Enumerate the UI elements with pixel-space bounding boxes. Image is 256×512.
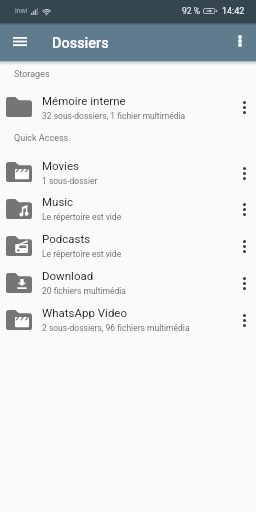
button[interactable]: More options bbox=[224, 22, 256, 61]
staticText: Movies bbox=[42, 159, 79, 172]
button[interactable]: More options for Podcasts bbox=[232, 227, 256, 264]
button[interactable]: WhatsApp Video bbox=[0, 301, 256, 338]
staticText: Quick Access bbox=[14, 133, 69, 144]
button[interactable]: Podcasts bbox=[0, 227, 256, 264]
staticText: Le répertoire est vide bbox=[42, 249, 122, 259]
staticText: Podcasts bbox=[42, 232, 91, 245]
staticText: 1 sous-dossier bbox=[42, 176, 98, 186]
staticText: Download bbox=[42, 269, 94, 282]
button[interactable]: More options for Download bbox=[232, 264, 256, 301]
staticText: Storages bbox=[14, 69, 50, 80]
staticText: 92 % bbox=[182, 6, 200, 16]
staticText: 14:42 bbox=[222, 6, 245, 17]
staticText: 32 sous-dossiers, 1 fichier multimédia bbox=[42, 111, 186, 121]
button[interactable]: Download bbox=[0, 264, 256, 301]
staticText: Mémoire interne bbox=[42, 94, 126, 107]
staticText: Le répertoire est vide bbox=[42, 212, 122, 222]
button[interactable]: Music bbox=[0, 190, 256, 227]
staticText: Music bbox=[42, 195, 74, 208]
button[interactable]: Movies bbox=[0, 154, 256, 190]
staticText: WhatsApp Video bbox=[42, 306, 128, 319]
button[interactable]: More options for Movies bbox=[232, 154, 256, 190]
staticText: 20 fichiers multimédia bbox=[42, 286, 126, 296]
button[interactable]: More options for Music bbox=[232, 190, 256, 227]
staticText: inwi bbox=[15, 7, 28, 15]
button[interactable]: More options for WhatsApp Video bbox=[232, 301, 256, 338]
button[interactable]: More options for Mémoire interne bbox=[232, 88, 256, 125]
button[interactable]: Mémoire interne bbox=[0, 88, 256, 125]
staticText: 2 sous-dossiers, 96 fichiers multimédia bbox=[42, 323, 190, 333]
staticText: Dossiers bbox=[52, 35, 109, 52]
button[interactable]: Open navigation drawer bbox=[0, 22, 40, 61]
